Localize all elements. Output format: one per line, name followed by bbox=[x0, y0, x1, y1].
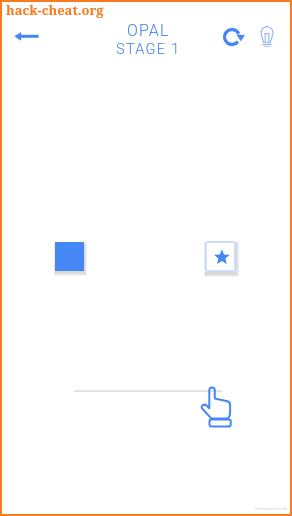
staticText: hack-cheat.org bbox=[6, 1, 104, 19]
staticText: Development build bbox=[255, 506, 288, 511]
button[interactable]: Hint bbox=[252, 24, 282, 54]
staticText: OPAL bbox=[127, 21, 170, 40]
button[interactable]: Goal tile bbox=[205, 241, 236, 272]
staticText: STAGE 1 bbox=[116, 41, 181, 58]
button[interactable]: Restart bbox=[215, 20, 249, 54]
button[interactable]: Back bbox=[9, 22, 45, 54]
